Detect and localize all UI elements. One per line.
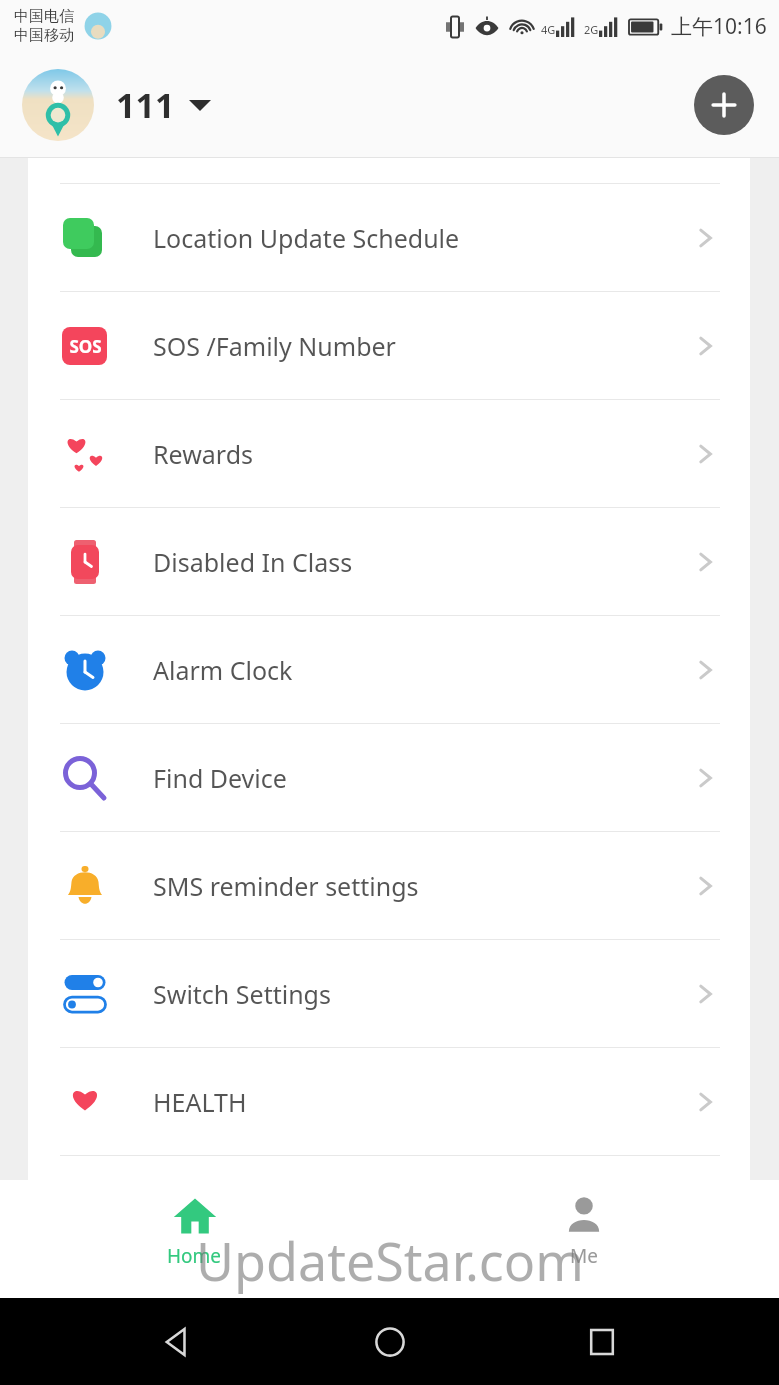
button[interactable]: Back xyxy=(150,1315,204,1369)
button[interactable]: Rewards xyxy=(28,400,750,507)
button[interactable]: Me xyxy=(389,1180,779,1298)
staticText: SOS xyxy=(69,335,102,358)
button[interactable]: Switch Settings xyxy=(28,940,750,1047)
staticText: Disabled In Class xyxy=(153,545,353,579)
button[interactable]: HEALTH xyxy=(28,1048,750,1155)
button[interactable]: SOS xyxy=(28,292,750,399)
staticText: Location Update Schedule xyxy=(153,221,460,255)
staticText: 111 xyxy=(116,82,175,128)
button[interactable]: SMS reminder settings xyxy=(28,832,750,939)
staticText: Rewards xyxy=(153,437,254,471)
button[interactable]: Alarm Clock xyxy=(28,616,750,723)
button[interactable]: 111 xyxy=(22,69,211,141)
button[interactable]: Location Update Schedule xyxy=(28,184,750,291)
staticText: 4G xyxy=(541,22,556,37)
staticText: HEALTH xyxy=(153,1085,247,1119)
staticText: Home xyxy=(167,1243,222,1269)
staticText: 中国电信 xyxy=(14,7,74,26)
button[interactable]: Add device xyxy=(694,75,754,135)
staticText: Me xyxy=(570,1243,598,1269)
staticText: SOS /Family Number xyxy=(153,329,396,363)
button[interactable]: Home xyxy=(0,1180,389,1298)
staticText: Switch Settings xyxy=(153,977,331,1011)
staticText: Find Device xyxy=(153,761,287,795)
staticText: 中国移动 xyxy=(14,26,74,45)
staticText: 2G xyxy=(584,22,599,37)
button[interactable]: Home xyxy=(363,1315,417,1369)
button[interactable]: Recents xyxy=(575,1315,629,1369)
button[interactable]: Disabled In Class xyxy=(28,508,750,615)
staticText: UpdateStar.com xyxy=(196,1225,584,1296)
staticText: Alarm Clock xyxy=(153,653,293,687)
button[interactable]: Find Device xyxy=(28,724,750,831)
staticText: SMS reminder settings xyxy=(153,869,419,903)
staticText: 上午10:16 xyxy=(671,12,767,41)
